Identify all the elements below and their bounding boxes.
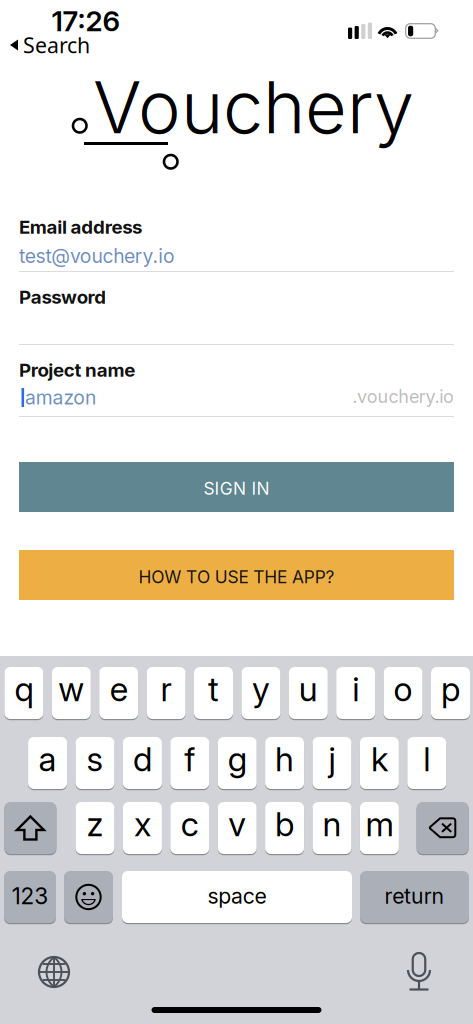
button[interactable]: g [218, 737, 257, 789]
staticText: p [441, 669, 460, 709]
staticText: return [384, 883, 444, 909]
staticText: Vouchery [93, 63, 414, 150]
button[interactable]: d [123, 737, 162, 789]
button[interactable]: Dictation [405, 953, 433, 991]
button[interactable]: a [28, 737, 67, 789]
staticText: Project name [19, 359, 135, 381]
staticText: k [371, 739, 388, 779]
button[interactable]: t [194, 667, 233, 719]
staticText: u [299, 669, 318, 709]
button[interactable]: h [265, 737, 304, 789]
staticText: 123 [12, 882, 48, 910]
button[interactable]: m [360, 802, 399, 854]
button[interactable]: u [289, 667, 328, 719]
staticText: f [184, 739, 195, 779]
staticText: x [134, 804, 151, 844]
staticText: h [275, 739, 294, 779]
staticText: t [208, 669, 219, 709]
staticText: e [110, 669, 128, 709]
button[interactable]: return [360, 871, 469, 923]
button[interactable]: SIGN IN [19, 462, 454, 512]
staticText: 17:26 [51, 4, 120, 38]
staticText: Email address [19, 216, 142, 238]
button[interactable]: 123 [4, 871, 56, 923]
button[interactable]: Shift [4, 802, 56, 854]
staticText: l [423, 739, 430, 779]
staticText: HOW TO USE THE APP? [138, 566, 335, 587]
staticText: c [181, 804, 199, 844]
button[interactable]: k [360, 737, 399, 789]
button[interactable]: c [170, 802, 209, 854]
staticText: a [39, 739, 57, 779]
staticText: m [365, 804, 393, 844]
staticText: r [161, 669, 172, 709]
button[interactable]: q [4, 667, 43, 719]
staticText: Password [19, 286, 106, 308]
staticText: space [207, 883, 267, 909]
button[interactable]: space [122, 871, 352, 923]
button[interactable]: Delete [417, 802, 469, 854]
staticText: .vouchery.io [352, 386, 454, 407]
button[interactable]: r [147, 667, 186, 719]
button[interactable]: f [170, 737, 209, 789]
button[interactable]: y [241, 667, 280, 719]
button[interactable]: j [312, 737, 351, 789]
staticText: s [86, 739, 103, 779]
button[interactable]: Search [10, 34, 110, 56]
staticText: test@vouchery.io [19, 244, 175, 268]
staticText: z [86, 804, 103, 844]
button[interactable]: w [52, 667, 91, 719]
button[interactable]: b [265, 802, 304, 854]
button[interactable]: Emoji [64, 871, 113, 923]
button[interactable]: z [75, 802, 114, 854]
button[interactable]: Next keyboard [38, 956, 70, 988]
staticText: j [328, 739, 335, 779]
button[interactable]: HOW TO USE THE APP? [19, 550, 454, 600]
staticText: i [352, 669, 359, 709]
staticText: d [133, 739, 152, 779]
button[interactable]: l [407, 737, 446, 789]
staticText: n [322, 804, 341, 844]
staticText: w [58, 669, 84, 709]
button[interactable]: i [336, 667, 375, 719]
staticText: SIGN IN [203, 478, 270, 499]
button[interactable]: x [123, 802, 162, 854]
staticText: g [228, 739, 247, 779]
staticText: Search [23, 31, 90, 59]
button[interactable]: v [218, 802, 257, 854]
staticText: y [252, 669, 270, 709]
button[interactable]: p [431, 667, 470, 719]
button[interactable]: e [99, 667, 138, 719]
staticText: v [228, 804, 246, 844]
staticText: amazon [25, 386, 96, 409]
button[interactable]: s [75, 737, 114, 789]
staticText: b [275, 804, 294, 844]
staticText: o [394, 669, 413, 709]
button[interactable]: o [384, 667, 423, 719]
staticText: q [14, 669, 33, 709]
button[interactable]: n [312, 802, 351, 854]
